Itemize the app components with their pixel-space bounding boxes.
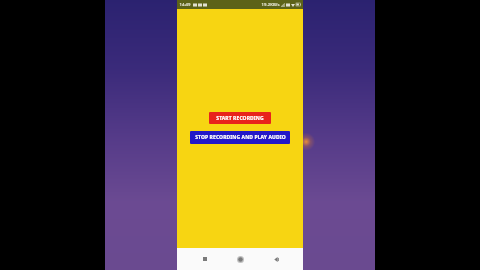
staticText: STOP RECORDING AND PLAY AUDIO xyxy=(195,134,286,141)
staticText: START RECORDING xyxy=(216,115,264,122)
button[interactable]: Recent apps xyxy=(197,251,213,267)
button[interactable]: Back xyxy=(268,251,284,267)
button[interactable]: START RECORDING xyxy=(209,112,271,124)
staticText: 19.2KB/s xyxy=(261,2,280,8)
button[interactable]: STOP RECORDING AND PLAY AUDIO xyxy=(190,131,290,144)
staticText: 14:49 xyxy=(179,2,191,8)
button[interactable]: Home xyxy=(232,251,248,267)
